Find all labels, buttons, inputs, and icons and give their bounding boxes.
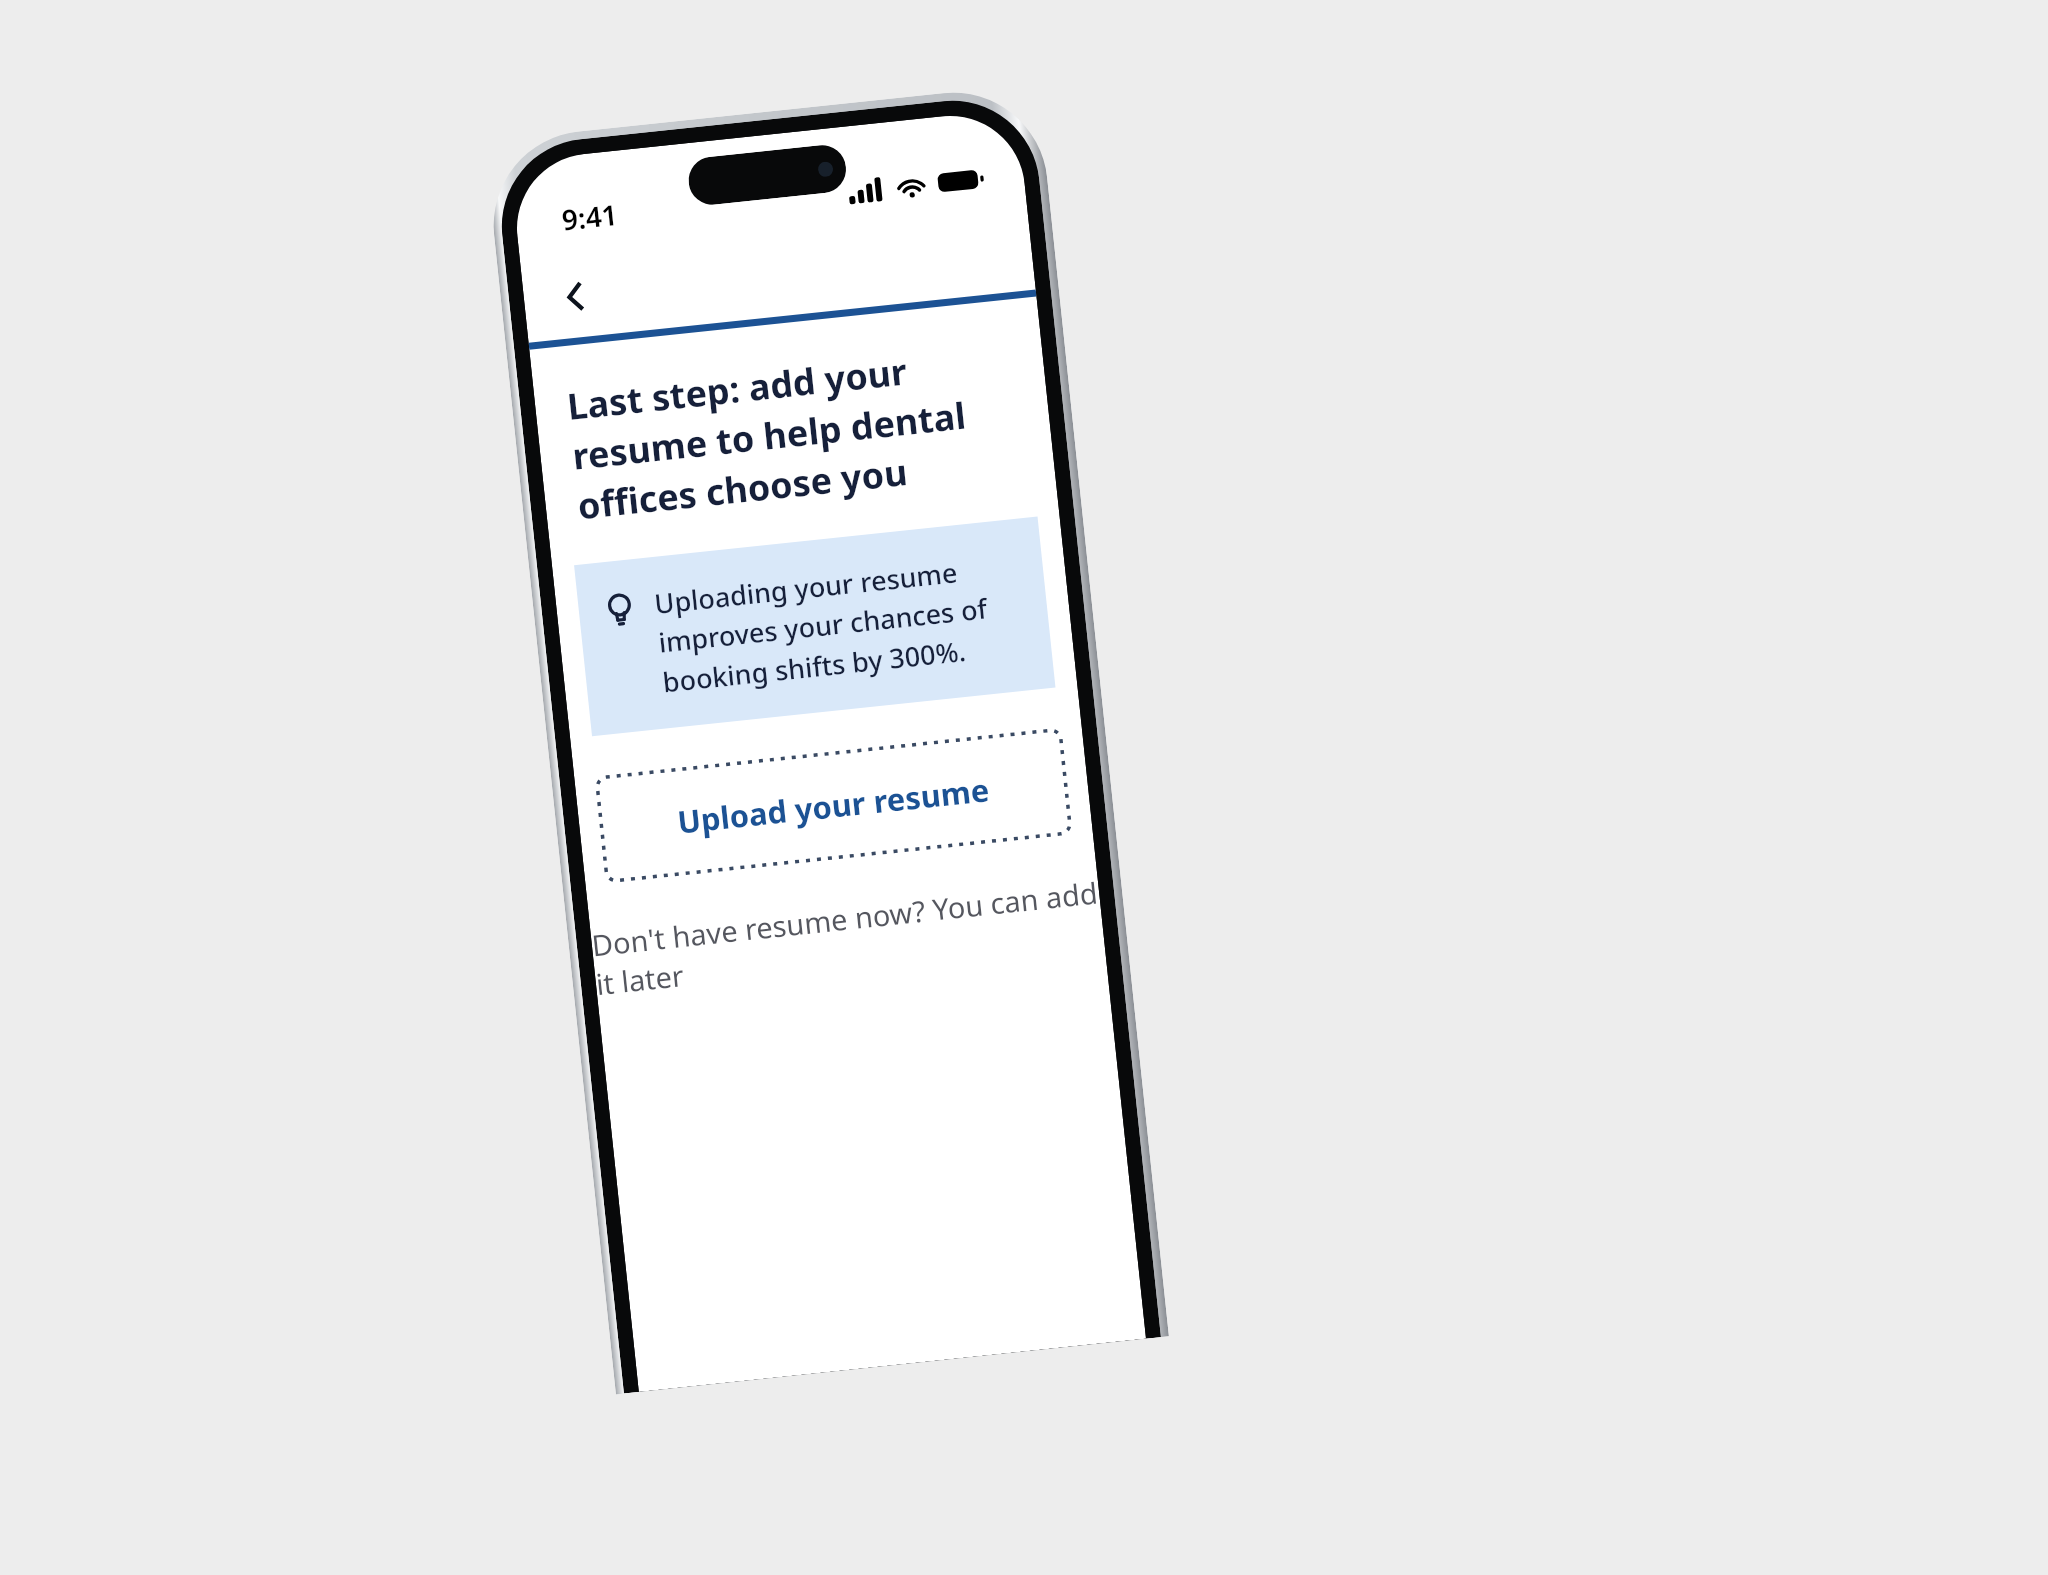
staticText: Last step: add your resume to help denta… xyxy=(565,336,1024,530)
staticText: 9:41 xyxy=(560,195,620,238)
staticText: Don't have resume now? You can add it la… xyxy=(590,872,1105,1003)
button[interactable]: Upload your resume xyxy=(596,729,1071,881)
button[interactable]: Back xyxy=(539,259,613,334)
staticText: Uploading your resume improves your chan… xyxy=(653,547,1029,700)
staticText: Upload your resume xyxy=(675,768,992,843)
button[interactable]: Don't have resume now? You can add it la… xyxy=(589,864,1106,1011)
